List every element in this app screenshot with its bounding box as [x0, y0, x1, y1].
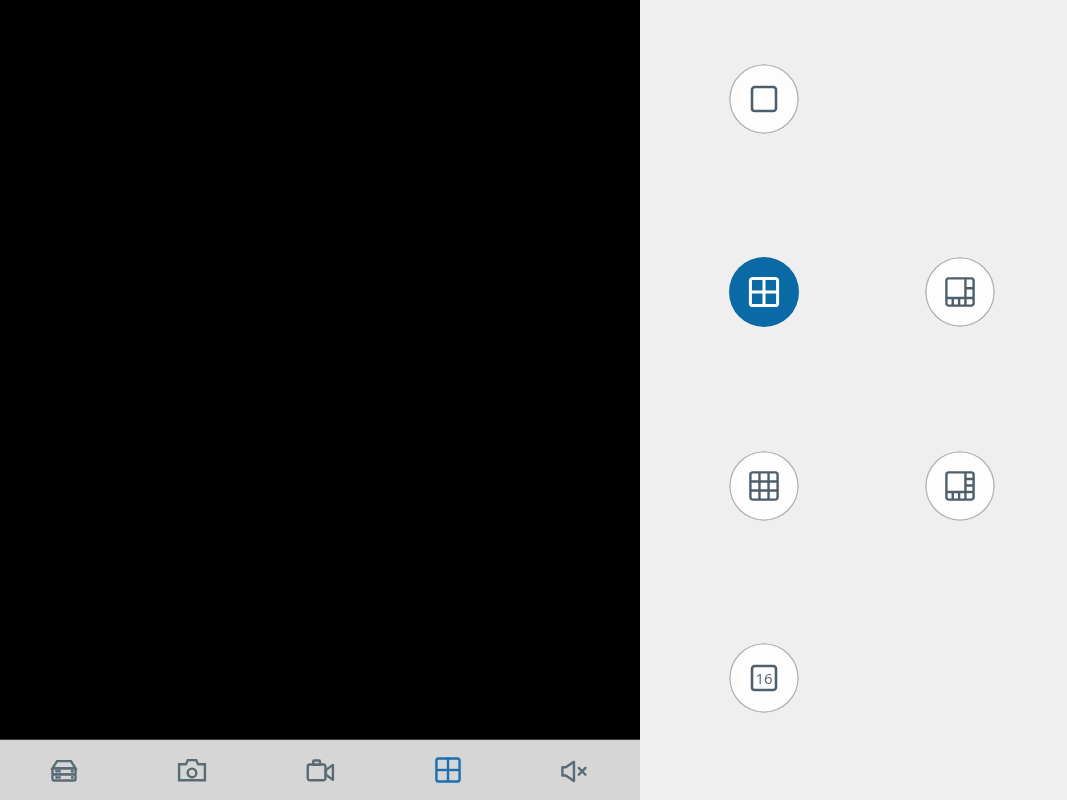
button[interactable]: Six pane layout	[925, 257, 995, 327]
button[interactable]: Sixteen pane layout	[729, 643, 799, 713]
button[interactable]: Photo	[128, 740, 256, 800]
button[interactable]: Nine pane grid layout	[729, 451, 799, 521]
button[interactable]: Storage	[0, 740, 128, 800]
button[interactable]: Video	[256, 740, 384, 800]
button[interactable]: Single pane layout	[729, 64, 799, 134]
button[interactable]: Four pane grid layout	[729, 257, 799, 327]
button[interactable]: Layout	[384, 740, 512, 800]
staticText: 16	[755, 668, 773, 688]
button[interactable]: Seven pane layout	[925, 451, 995, 521]
button[interactable]: Mute	[512, 740, 640, 800]
